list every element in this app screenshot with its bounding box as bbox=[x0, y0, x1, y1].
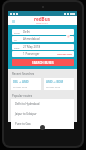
staticText: Popular routes bbox=[12, 94, 33, 98]
staticText: ADD RETURN bbox=[57, 53, 72, 56]
button[interactable]: SEARCH BUSES bbox=[12, 59, 74, 66]
button[interactable]: From bbox=[12, 29, 74, 35]
staticText: SEARCH BUSES bbox=[32, 61, 54, 65]
staticText: Jaipur to Udaipur bbox=[15, 112, 37, 116]
button[interactable]: To bbox=[12, 36, 74, 42]
staticText: 27 May 2018 bbox=[13, 85, 28, 88]
button[interactable]: AMD → BOM bbox=[44, 78, 74, 90]
button[interactable]: 1 Passenger bbox=[12, 51, 74, 57]
button[interactable]: Swap source and destination bbox=[66, 34, 70, 38]
button[interactable]: Pune to Goa bbox=[11, 119, 74, 129]
staticText: 29 May 2018 bbox=[46, 85, 61, 88]
button[interactable]: Date bbox=[12, 44, 74, 50]
button[interactable]: DEL → AMD bbox=[11, 78, 41, 90]
staticText: Date bbox=[14, 46, 20, 49]
staticText: Pune to Goa bbox=[15, 122, 31, 126]
staticText: AMD → BOM bbox=[46, 80, 64, 84]
staticText: Ahmedabad bbox=[23, 37, 40, 41]
staticText: Recent Searches bbox=[12, 72, 35, 76]
staticText: Delhi to Hyderabad bbox=[15, 102, 40, 106]
staticText: Delhi bbox=[23, 30, 31, 34]
staticText: 1 Passenger bbox=[23, 52, 40, 56]
button[interactable]: Delhi to Hyderabad bbox=[11, 99, 74, 109]
staticText: To bbox=[14, 38, 17, 41]
staticText: redBus bbox=[34, 16, 50, 22]
staticText: India's No.1 bbox=[36, 22, 49, 25]
staticText: DEL → AMD bbox=[13, 80, 29, 84]
staticText: 27 May 2018 bbox=[23, 45, 41, 49]
button[interactable]: Menu bbox=[10, 18, 16, 24]
button[interactable]: Jaipur to Udaipur bbox=[11, 109, 74, 119]
staticText: From bbox=[14, 31, 20, 34]
